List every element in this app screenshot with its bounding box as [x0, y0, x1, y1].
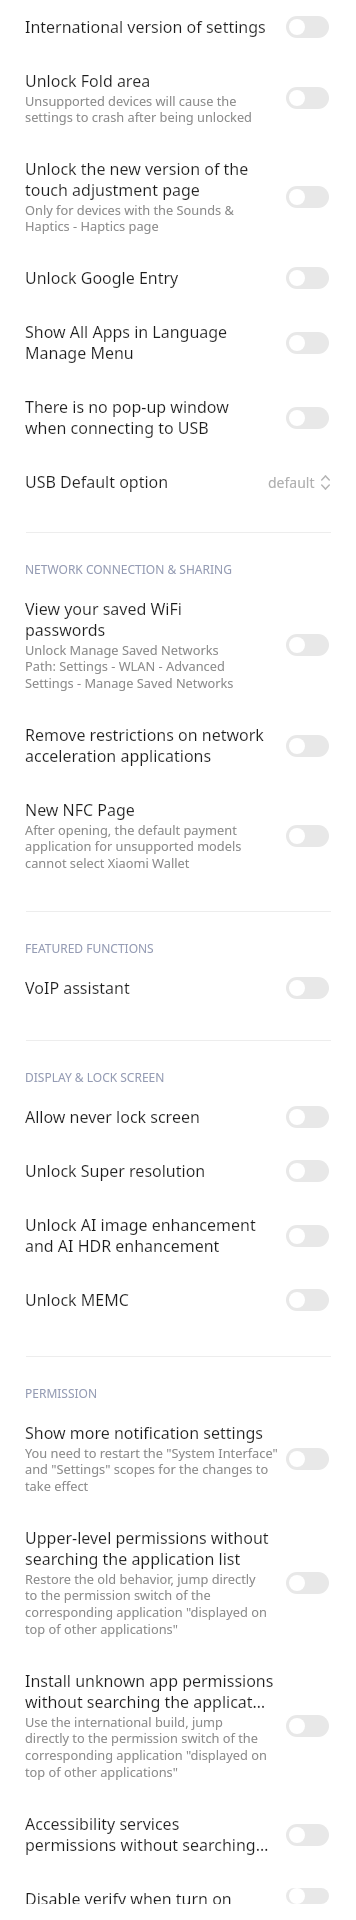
button[interactable]: Toggle switch	[286, 1289, 329, 1311]
staticText: Only for devices with the Sounds & Hapti…	[25, 201, 234, 235]
button[interactable]: Show All Apps in Language Manage Menu	[0, 305, 356, 380]
button[interactable]: Toggle switch	[286, 1106, 329, 1128]
staticText: NETWORK CONNECTION & SHARING	[25, 561, 232, 577]
button[interactable]: Toggle switch	[286, 267, 329, 289]
button[interactable]: USB Default option	[0, 455, 356, 509]
staticText: International version of settings	[25, 16, 266, 38]
button[interactable]: Install unknown app permissions without …	[0, 1654, 356, 1797]
button[interactable]: Toggle switch	[286, 87, 329, 109]
button[interactable]: Toggle switch	[286, 1448, 329, 1470]
staticText: Upper-level permissions without searchin…	[25, 1527, 269, 1570]
staticText: default	[268, 473, 315, 492]
button[interactable]: International version of settings	[0, 0, 356, 54]
staticText: Show more notification settings	[25, 1422, 264, 1444]
button[interactable]: Unlock Google Entry	[0, 251, 356, 305]
button[interactable]: Toggle switch	[286, 634, 329, 656]
button[interactable]: Toggle switch	[286, 1888, 329, 1904]
staticText: PERMISSION	[25, 1385, 98, 1401]
staticText: FEATURED FUNCTIONS	[25, 940, 154, 956]
staticText: Show All Apps in Language Manage Menu	[25, 321, 228, 364]
staticText: Unsupported devices will cause the setti…	[25, 92, 252, 126]
staticText: Disable verify when turn on allow instal…	[25, 1888, 255, 1904]
staticText: VoIP assistant	[25, 977, 130, 999]
staticText: Unlock Google Entry	[25, 267, 179, 289]
staticText: Unlock the new version of the touch adju…	[25, 158, 249, 201]
staticText: Unlock Manage Saved Networks Path: Setti…	[25, 641, 234, 692]
button[interactable]: Accessibility services permissions witho…	[0, 1797, 356, 1872]
staticText: USB Default option	[25, 471, 169, 493]
button[interactable]: Toggle switch	[286, 1824, 329, 1846]
button[interactable]: VoIP assistant	[0, 961, 356, 1015]
staticText: Unlock Super resolution	[25, 1160, 206, 1182]
button[interactable]: View your saved WiFi passwords	[0, 582, 356, 708]
staticText: There is no pop-up window when connectin…	[25, 396, 229, 439]
staticText: Restore the old behavior, jump directly …	[25, 1570, 267, 1638]
button[interactable]: Toggle switch	[286, 977, 329, 999]
staticText: Unlock Fold area	[25, 70, 151, 92]
staticText: Unlock MEMC	[25, 1289, 129, 1311]
button[interactable]: Toggle switch	[286, 332, 329, 354]
button[interactable]: Disable verify when turn on allow instal…	[0, 1872, 356, 1920]
staticText: You need to restart the "System Interfac…	[25, 1444, 278, 1495]
staticText: Unlock AI image enhancement and AI HDR e…	[25, 1214, 256, 1257]
staticText: Allow never lock screen	[25, 1106, 200, 1128]
staticText: New NFC Page	[25, 799, 135, 821]
button[interactable]: Remove restrictions on network accelerat…	[0, 708, 356, 783]
button[interactable]: New NFC Page	[0, 783, 356, 888]
staticText: DISPLAY & LOCK SCREEN	[25, 1069, 165, 1085]
button[interactable]: Toggle switch	[286, 1225, 329, 1247]
button[interactable]: Upper-level permissions without searchin…	[0, 1511, 356, 1654]
button[interactable]: Toggle switch	[286, 16, 329, 38]
button[interactable]: Show more notification settings	[0, 1406, 356, 1511]
button[interactable]: Unlock Super resolution	[0, 1144, 356, 1198]
button[interactable]: Unlock AI image enhancement and AI HDR e…	[0, 1198, 356, 1273]
staticText: Use the international build, jump direct…	[25, 1713, 267, 1781]
button[interactable]: Unlock Fold area	[0, 54, 356, 142]
button[interactable]: Toggle switch	[286, 407, 329, 429]
button[interactable]: Toggle switch	[286, 825, 329, 847]
button[interactable]: Toggle switch	[286, 1572, 329, 1594]
button[interactable]: Toggle switch	[286, 735, 329, 757]
button[interactable]: Unlock the new version of the touch adju…	[0, 142, 356, 251]
button[interactable]: Unlock MEMC	[0, 1273, 356, 1327]
staticText: Remove restrictions on network accelerat…	[25, 724, 264, 767]
staticText: After opening, the default payment appli…	[25, 821, 242, 872]
button[interactable]: There is no pop-up window when connectin…	[0, 380, 356, 455]
button[interactable]: Allow never lock screen	[0, 1090, 356, 1144]
staticText: Accessibility services permissions witho…	[25, 1813, 269, 1856]
button[interactable]: Toggle switch	[286, 186, 329, 208]
staticText: Install unknown app permissions without …	[25, 1670, 274, 1713]
button[interactable]: Toggle switch	[286, 1715, 329, 1737]
button[interactable]: Toggle switch	[286, 1160, 329, 1182]
staticText: View your saved WiFi passwords	[25, 598, 182, 641]
